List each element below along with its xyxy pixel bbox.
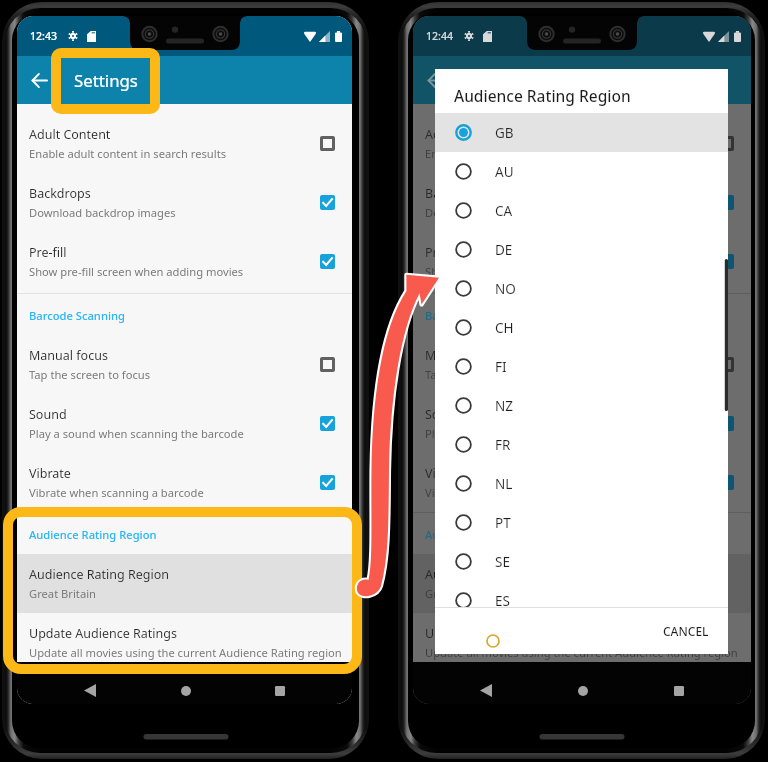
staticText: FI (495, 358, 507, 376)
button[interactable]: CANCEL (647, 607, 728, 654)
staticText: 12:44 (426, 29, 454, 43)
staticText: 12:43 (30, 29, 58, 43)
staticText: Enable adult content in search results (29, 146, 227, 161)
staticText: ES (495, 592, 510, 610)
button[interactable]: NZ (435, 386, 728, 425)
staticText: Settings (74, 69, 138, 92)
staticText: NZ (495, 397, 513, 415)
button[interactable]: Vibrate (17, 453, 352, 512)
staticText: Download backdrop images (425, 205, 572, 220)
staticText: Update all movies using the current Audi… (425, 645, 738, 660)
staticText: Vibrate when scanning a barcode (29, 485, 204, 500)
staticText: CANCEL (663, 623, 709, 639)
button[interactable]: Pre-fill (17, 232, 352, 291)
staticText: Sound (425, 406, 463, 423)
button[interactable]: NL (435, 464, 728, 503)
staticText: Update Audience Ratings (29, 625, 177, 642)
button[interactable]: Home (578, 686, 588, 696)
staticText: Backdrops (425, 185, 487, 202)
staticText: Tap the screen to focus (29, 367, 151, 382)
staticText: Audience Rating Region (454, 85, 631, 106)
staticText: NO (495, 280, 516, 298)
staticText: Audience Rating Region (29, 527, 157, 542)
staticText: Great Britain (29, 586, 96, 601)
button[interactable]: Recents (674, 686, 684, 696)
staticText: CH (495, 319, 514, 337)
staticText: Show pre-fill screen when adding movies (425, 264, 640, 279)
button[interactable]: Adult Content (17, 114, 352, 173)
button[interactable]: Backdrops (17, 173, 352, 232)
staticText: Play a sound when scanning the barcode (29, 426, 244, 441)
button[interactable]: Home (181, 686, 191, 696)
button[interactable]: FR (435, 425, 728, 464)
button[interactable]: Manual focus (17, 335, 352, 394)
staticText: PT (495, 514, 511, 532)
button[interactable]: Back (32, 73, 47, 88)
staticText: Audience Rating Region (425, 527, 553, 542)
staticText: GB (495, 124, 514, 142)
staticText: FR (495, 436, 511, 454)
button[interactable]: Back (84, 684, 96, 697)
staticText: NL (495, 475, 513, 493)
staticText: AU (495, 163, 514, 181)
staticText: Manual focus (425, 347, 504, 364)
staticText: Vibrate (29, 465, 71, 482)
button[interactable]: Audience Rating Region (17, 554, 352, 613)
staticText: Barcode Scanning (425, 308, 521, 323)
staticText: Great Britain (425, 586, 492, 601)
button[interactable]: FI (435, 347, 728, 386)
staticText: Play a sound when scanning the barcode (425, 426, 640, 441)
staticText: CA (495, 202, 513, 220)
staticText: Adult Content (425, 126, 507, 143)
button[interactable]: Sound (17, 394, 352, 453)
staticText: Enable adult content in search results (425, 146, 623, 161)
button[interactable]: Update Audience Ratings (17, 613, 352, 672)
staticText: Sound (29, 406, 67, 423)
staticText: Download backdrop images (29, 205, 176, 220)
staticText: DE (495, 241, 513, 259)
staticText: Show pre-fill screen when adding movies (29, 264, 244, 279)
button[interactable]: NO (435, 269, 728, 308)
staticText: Pre-fill (29, 244, 67, 261)
button[interactable]: GB (435, 113, 728, 152)
staticText: Update Audience Ratings (425, 625, 573, 642)
button[interactable]: CA (435, 191, 728, 230)
button[interactable]: CH (435, 308, 728, 347)
staticText: SE (495, 553, 510, 571)
staticText: Backdrops (29, 185, 91, 202)
staticText: Audience Rating Region (425, 566, 565, 583)
staticText: Manual focus (29, 347, 108, 364)
staticText: Pre-fill (425, 244, 463, 261)
button[interactable]: AU (435, 152, 728, 191)
button[interactable]: PT (435, 503, 728, 542)
button[interactable]: DE (435, 230, 728, 269)
staticText: Update all movies using the current Audi… (29, 645, 342, 660)
button[interactable]: ES (435, 581, 728, 620)
staticText: Vibrate (425, 465, 467, 482)
staticText: Tap the screen to focus (425, 367, 547, 382)
staticText: Vibrate when scanning a barcode (425, 485, 600, 500)
button[interactable]: SE (435, 542, 728, 581)
button[interactable]: Back (480, 684, 492, 697)
staticText: Adult Content (29, 126, 111, 143)
button[interactable]: Recents (275, 686, 285, 696)
staticText: Audience Rating Region (29, 566, 169, 583)
staticText: Barcode Scanning (29, 308, 125, 323)
